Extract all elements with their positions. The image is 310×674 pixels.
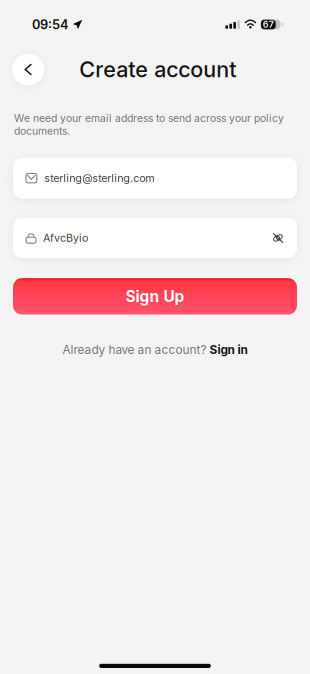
staticText: Sign in (210, 343, 248, 357)
button[interactable]: Show password (266, 227, 284, 249)
staticText: 09:54 (32, 17, 69, 32)
staticText: Sign Up (125, 287, 184, 306)
button[interactable]: Sign Up (0, 258, 310, 315)
staticText: AfvcByio (43, 231, 88, 244)
staticText: 67 (263, 19, 274, 30)
button[interactable]: Already have an account? (0, 315, 310, 357)
staticText: Already have an account? (62, 343, 206, 357)
staticText: Create account (79, 56, 236, 82)
button[interactable]: Back (12, 53, 44, 85)
staticText: sterling@sterling.com (44, 172, 154, 185)
staticText: We need your email address to send acros… (14, 112, 284, 137)
